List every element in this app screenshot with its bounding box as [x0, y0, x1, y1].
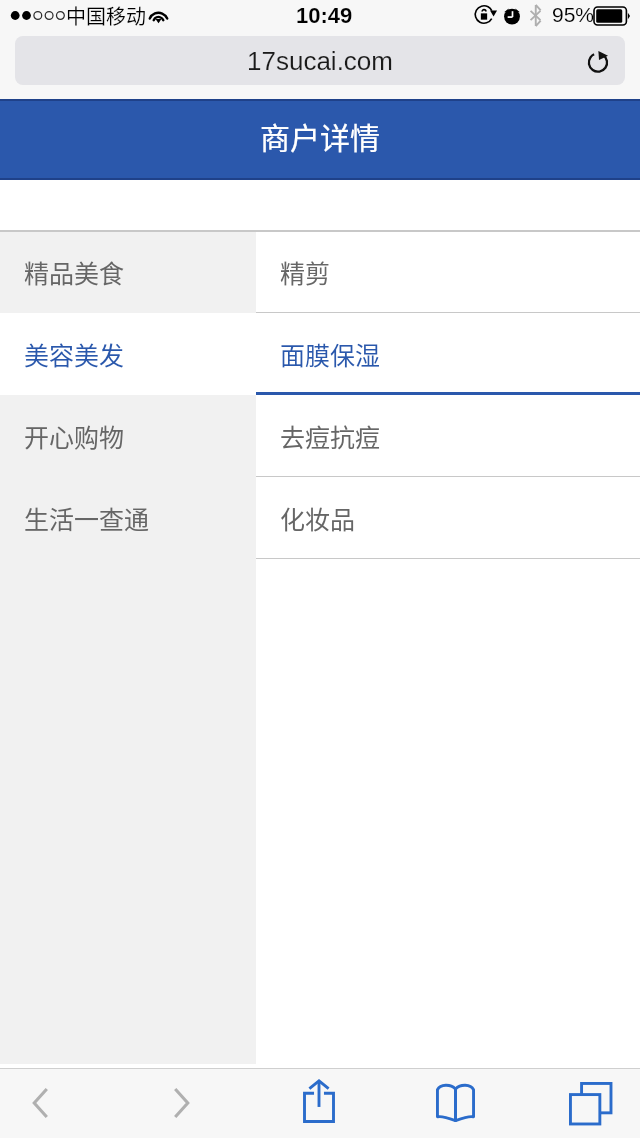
button[interactable]: 去痘抗痘	[256, 395, 640, 477]
staticText: 面膜保湿	[280, 336, 381, 372]
button[interactable]: 生活一查通	[0, 477, 256, 559]
staticText: 美容美发	[24, 336, 125, 372]
button[interactable]: 17sucai.com	[15, 36, 625, 85]
staticText: 95%	[552, 3, 595, 26]
staticText: 17sucai.com	[15, 46, 625, 75]
button[interactable]: 化妆品	[256, 477, 640, 559]
staticText: 商户详情	[0, 114, 640, 157]
staticText: 中国移动	[66, 1, 146, 30]
staticText: 生活一查通	[24, 500, 150, 536]
button[interactable]: 精剪	[256, 231, 640, 313]
button[interactable]: Share	[287, 1067, 351, 1135]
staticText: 10:49	[296, 3, 353, 28]
button[interactable]: Reload	[586, 48, 612, 74]
button[interactable]: Forward	[149, 1069, 213, 1137]
button[interactable]: 美容美发	[0, 313, 256, 395]
button[interactable]: Back	[8, 1069, 72, 1137]
staticText: 精品美食	[24, 254, 125, 290]
button[interactable]: 开心购物	[0, 395, 256, 477]
button[interactable]: Tabs	[558, 1069, 622, 1137]
button[interactable]: 面膜保湿	[256, 313, 640, 395]
staticText: 开心购物	[24, 418, 125, 454]
staticText: 精剪	[280, 254, 331, 290]
button[interactable]: 精品美食	[0, 231, 256, 313]
button[interactable]: Bookmarks	[423, 1068, 487, 1136]
staticText: 去痘抗痘	[280, 418, 381, 454]
staticText: 化妆品	[280, 500, 356, 536]
